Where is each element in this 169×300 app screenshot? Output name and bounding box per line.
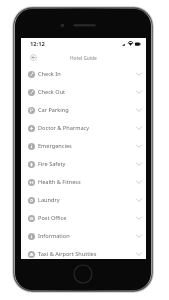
staticText: Health & Fitness bbox=[38, 178, 81, 186]
button[interactable]: Taxi & Airport Shuttles bbox=[21, 245, 146, 263]
button[interactable]: Check In bbox=[21, 65, 146, 83]
staticText: Doctor & Pharmacy bbox=[38, 124, 90, 132]
button[interactable]: Back bbox=[30, 54, 37, 61]
staticText: Car Parking bbox=[38, 106, 69, 114]
staticText: Emergencies bbox=[38, 142, 72, 150]
staticText: Laundry bbox=[38, 196, 60, 204]
staticText: Check Out bbox=[38, 88, 66, 96]
staticText: 12:12 bbox=[30, 40, 45, 48]
staticText: Check In bbox=[38, 70, 61, 78]
button[interactable]: Check Out bbox=[21, 83, 146, 101]
button[interactable]: Laundry bbox=[21, 191, 146, 209]
staticText: Information bbox=[38, 232, 70, 240]
staticText: Hotel Guide bbox=[70, 55, 97, 62]
button[interactable]: Health & Fitness bbox=[21, 173, 146, 191]
staticText: Fire Safety bbox=[38, 160, 66, 168]
button[interactable]: Car Parking bbox=[21, 101, 146, 119]
button[interactable]: Doctor & Pharmacy bbox=[21, 119, 146, 137]
staticText: Taxi & Airport Shuttles bbox=[38, 250, 97, 258]
button[interactable]: Emergencies bbox=[21, 137, 146, 155]
button[interactable]: Post Office bbox=[21, 209, 146, 227]
button[interactable]: Information bbox=[21, 227, 146, 245]
staticText: Post Office bbox=[38, 214, 67, 222]
button[interactable]: Fire Safety bbox=[21, 155, 146, 173]
